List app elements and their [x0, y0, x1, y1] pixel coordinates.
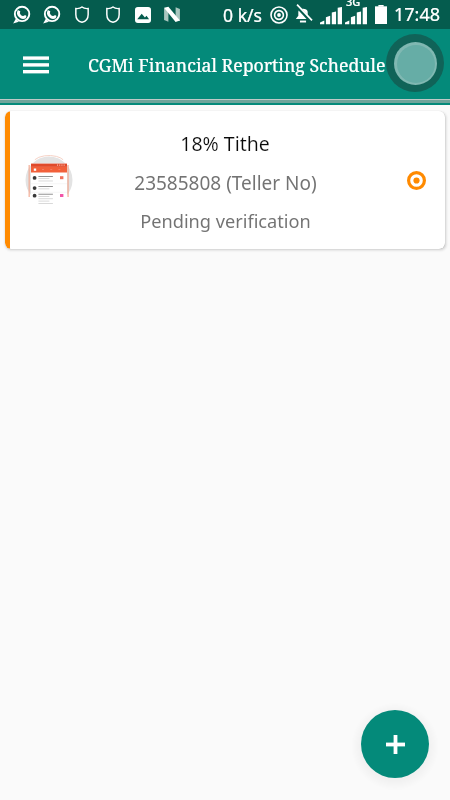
staticText: 18% Tithe [180, 130, 270, 157]
button[interactable]: 18% Tithe [5, 111, 445, 249]
button[interactable]: Open navigation menu [12, 40, 60, 88]
button[interactable]: Add new item [361, 710, 429, 778]
staticText: 17:48 [394, 2, 441, 27]
staticText: 3G [346, 0, 361, 9]
staticText: 23585808 (Teller No) [134, 170, 317, 196]
staticText: Pending verification [140, 209, 311, 234]
staticText: 0 k/s [223, 3, 263, 27]
staticText: CGMi Financial Reporting Schedule [88, 53, 386, 77]
button[interactable]: Status indicator [400, 164, 432, 196]
button[interactable]: Account [386, 34, 444, 92]
